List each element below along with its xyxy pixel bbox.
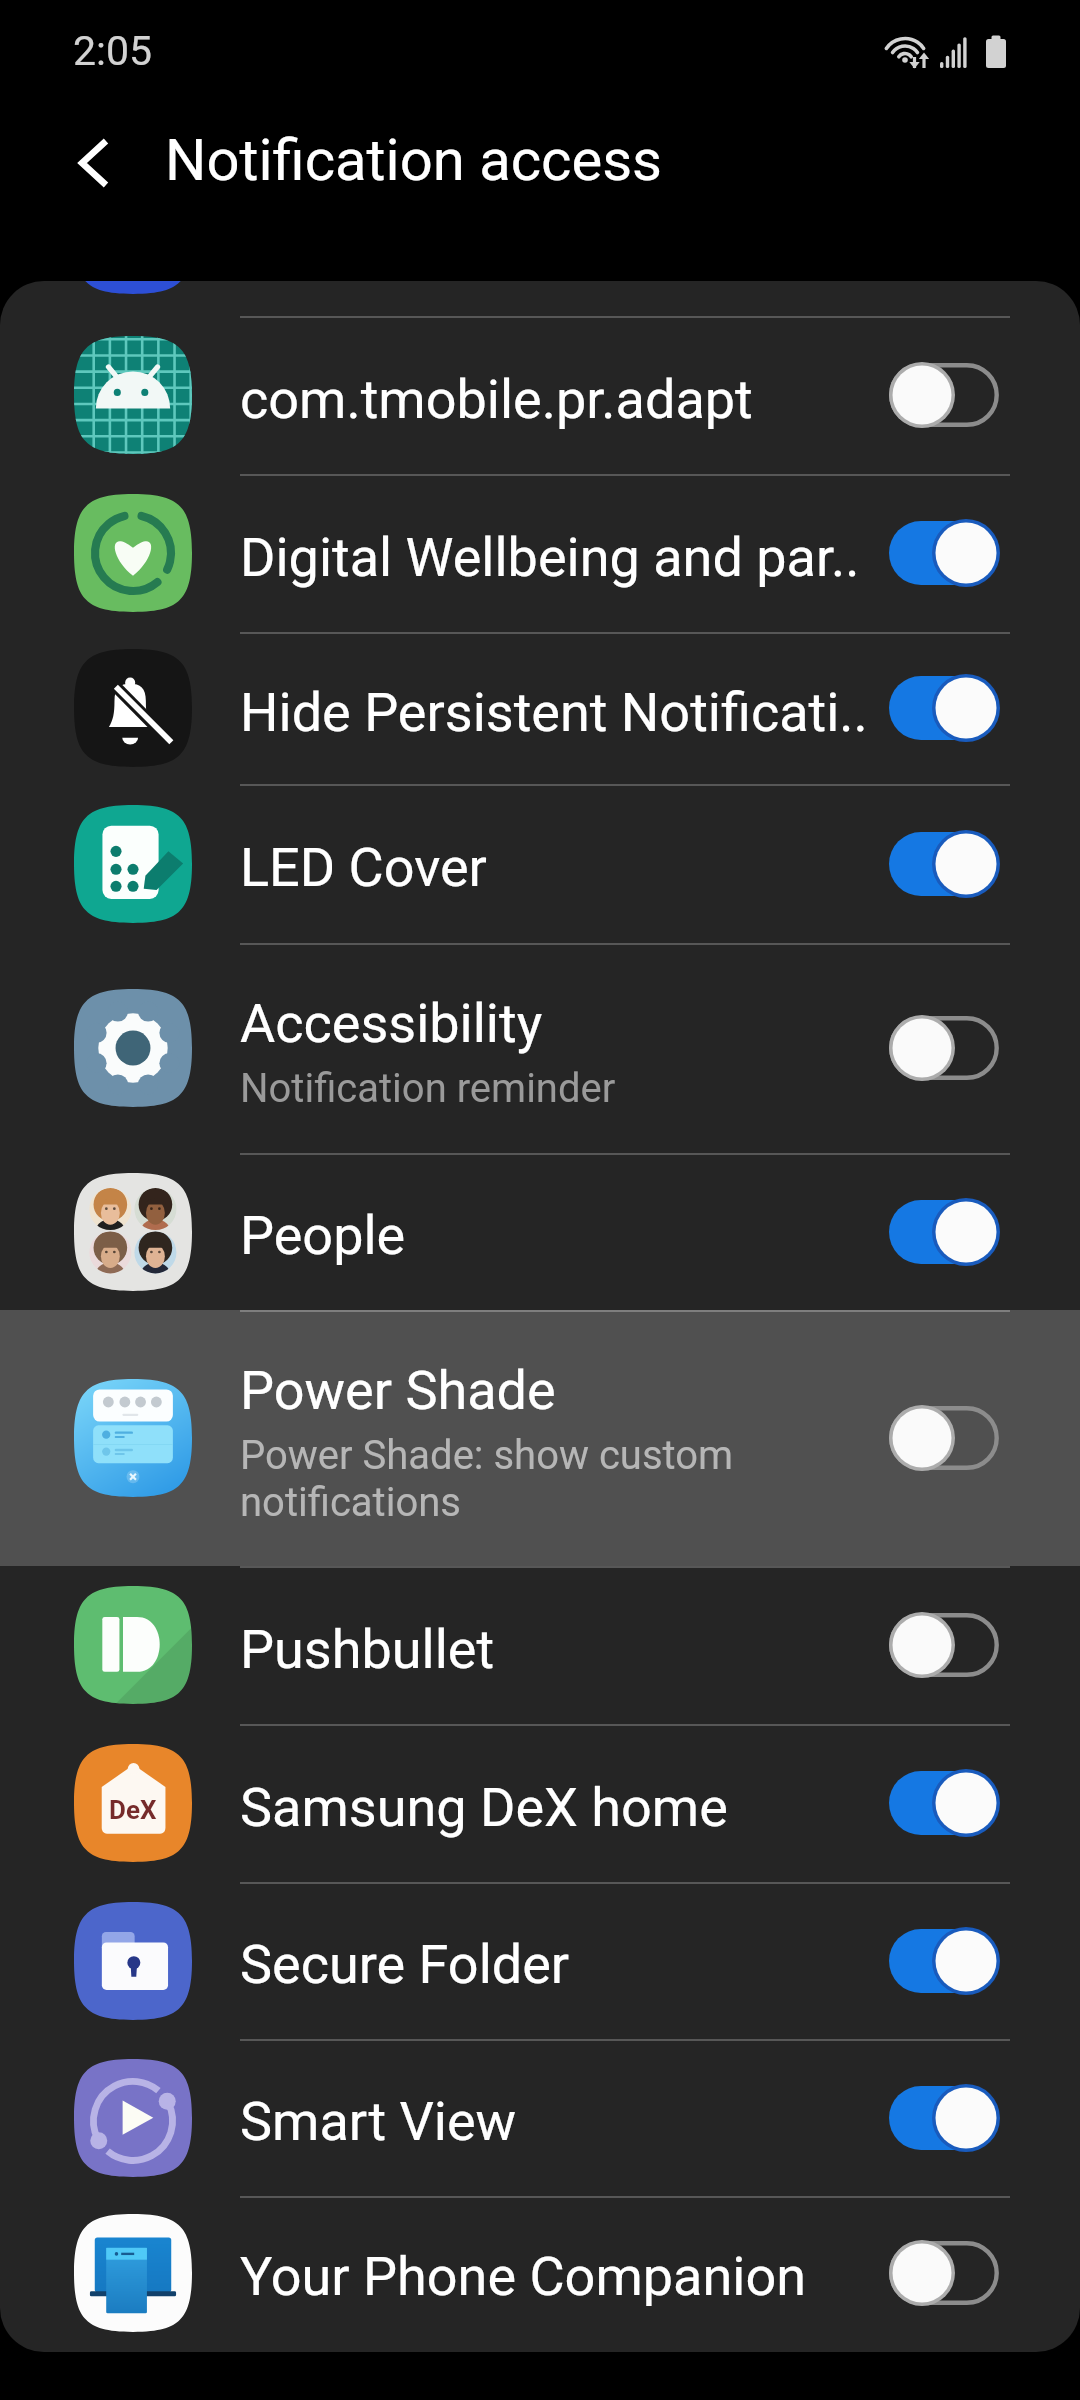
staticText: Pushbullet xyxy=(240,1618,495,1681)
button[interactable]: Back xyxy=(48,115,144,211)
staticText: Power Shade: show custom notifications xyxy=(240,1432,734,1526)
staticText: com.tmobile.pr.adapt xyxy=(240,368,753,431)
button[interactable]: Toggle on xyxy=(874,1182,1014,1282)
staticText: Accessibility xyxy=(240,992,543,1055)
button[interactable]: Accessibility xyxy=(0,943,1080,1153)
staticText: Notification access xyxy=(165,126,663,194)
button[interactable]: Secure Folder xyxy=(0,1882,1080,2039)
staticText: LED Cover xyxy=(240,836,487,899)
button[interactable]: LED Cover xyxy=(0,784,1080,943)
button[interactable]: Toggle off xyxy=(874,2223,1014,2323)
button[interactable]: Toggle on xyxy=(874,2068,1014,2168)
button[interactable]: Toggle off xyxy=(874,998,1014,1098)
staticText: Samsung DeX home xyxy=(240,1776,728,1839)
button[interactable]: Toggle on xyxy=(874,658,1014,758)
button[interactable]: Your Phone Companion xyxy=(0,2196,1080,2349)
button[interactable]: com.tmobile.pr.adapt xyxy=(0,316,1080,474)
staticText: Power Shade xyxy=(240,1359,556,1422)
button[interactable]: Digital Wellbeing and par.. xyxy=(0,474,1080,632)
button[interactable]: Pushbullet xyxy=(0,1566,1080,1724)
button[interactable]: Toggle off xyxy=(874,345,1014,445)
staticText: Smart View xyxy=(240,2090,517,2153)
staticText: People xyxy=(240,1204,406,1267)
staticText: DeX xyxy=(109,1795,157,1825)
button[interactable]: Toggle on xyxy=(874,503,1014,603)
button[interactable]: Toggle on xyxy=(874,1753,1014,1853)
button[interactable]: Power Shade xyxy=(0,1310,1080,1566)
staticText: 2:05 xyxy=(73,27,153,75)
button[interactable]: DeX xyxy=(0,1724,1080,1882)
button[interactable]: Hide Persistent Notificati.. xyxy=(0,632,1080,784)
staticText: Hide Persistent Notificati.. xyxy=(240,681,868,744)
button[interactable]: Smart View xyxy=(0,2039,1080,2196)
button[interactable]: Toggle on xyxy=(874,1911,1014,2011)
button[interactable]: Toggle off xyxy=(874,1595,1014,1695)
button[interactable]: People xyxy=(0,1153,1080,1310)
button[interactable]: Toggle off xyxy=(874,1388,1014,1488)
staticText: Your Phone Companion xyxy=(240,2245,806,2308)
staticText: Digital Wellbeing and par.. xyxy=(240,526,860,589)
button[interactable]: Toggle on xyxy=(874,814,1014,914)
staticText: Secure Folder xyxy=(240,1933,570,1996)
staticText: Notification reminder xyxy=(240,1065,616,1112)
